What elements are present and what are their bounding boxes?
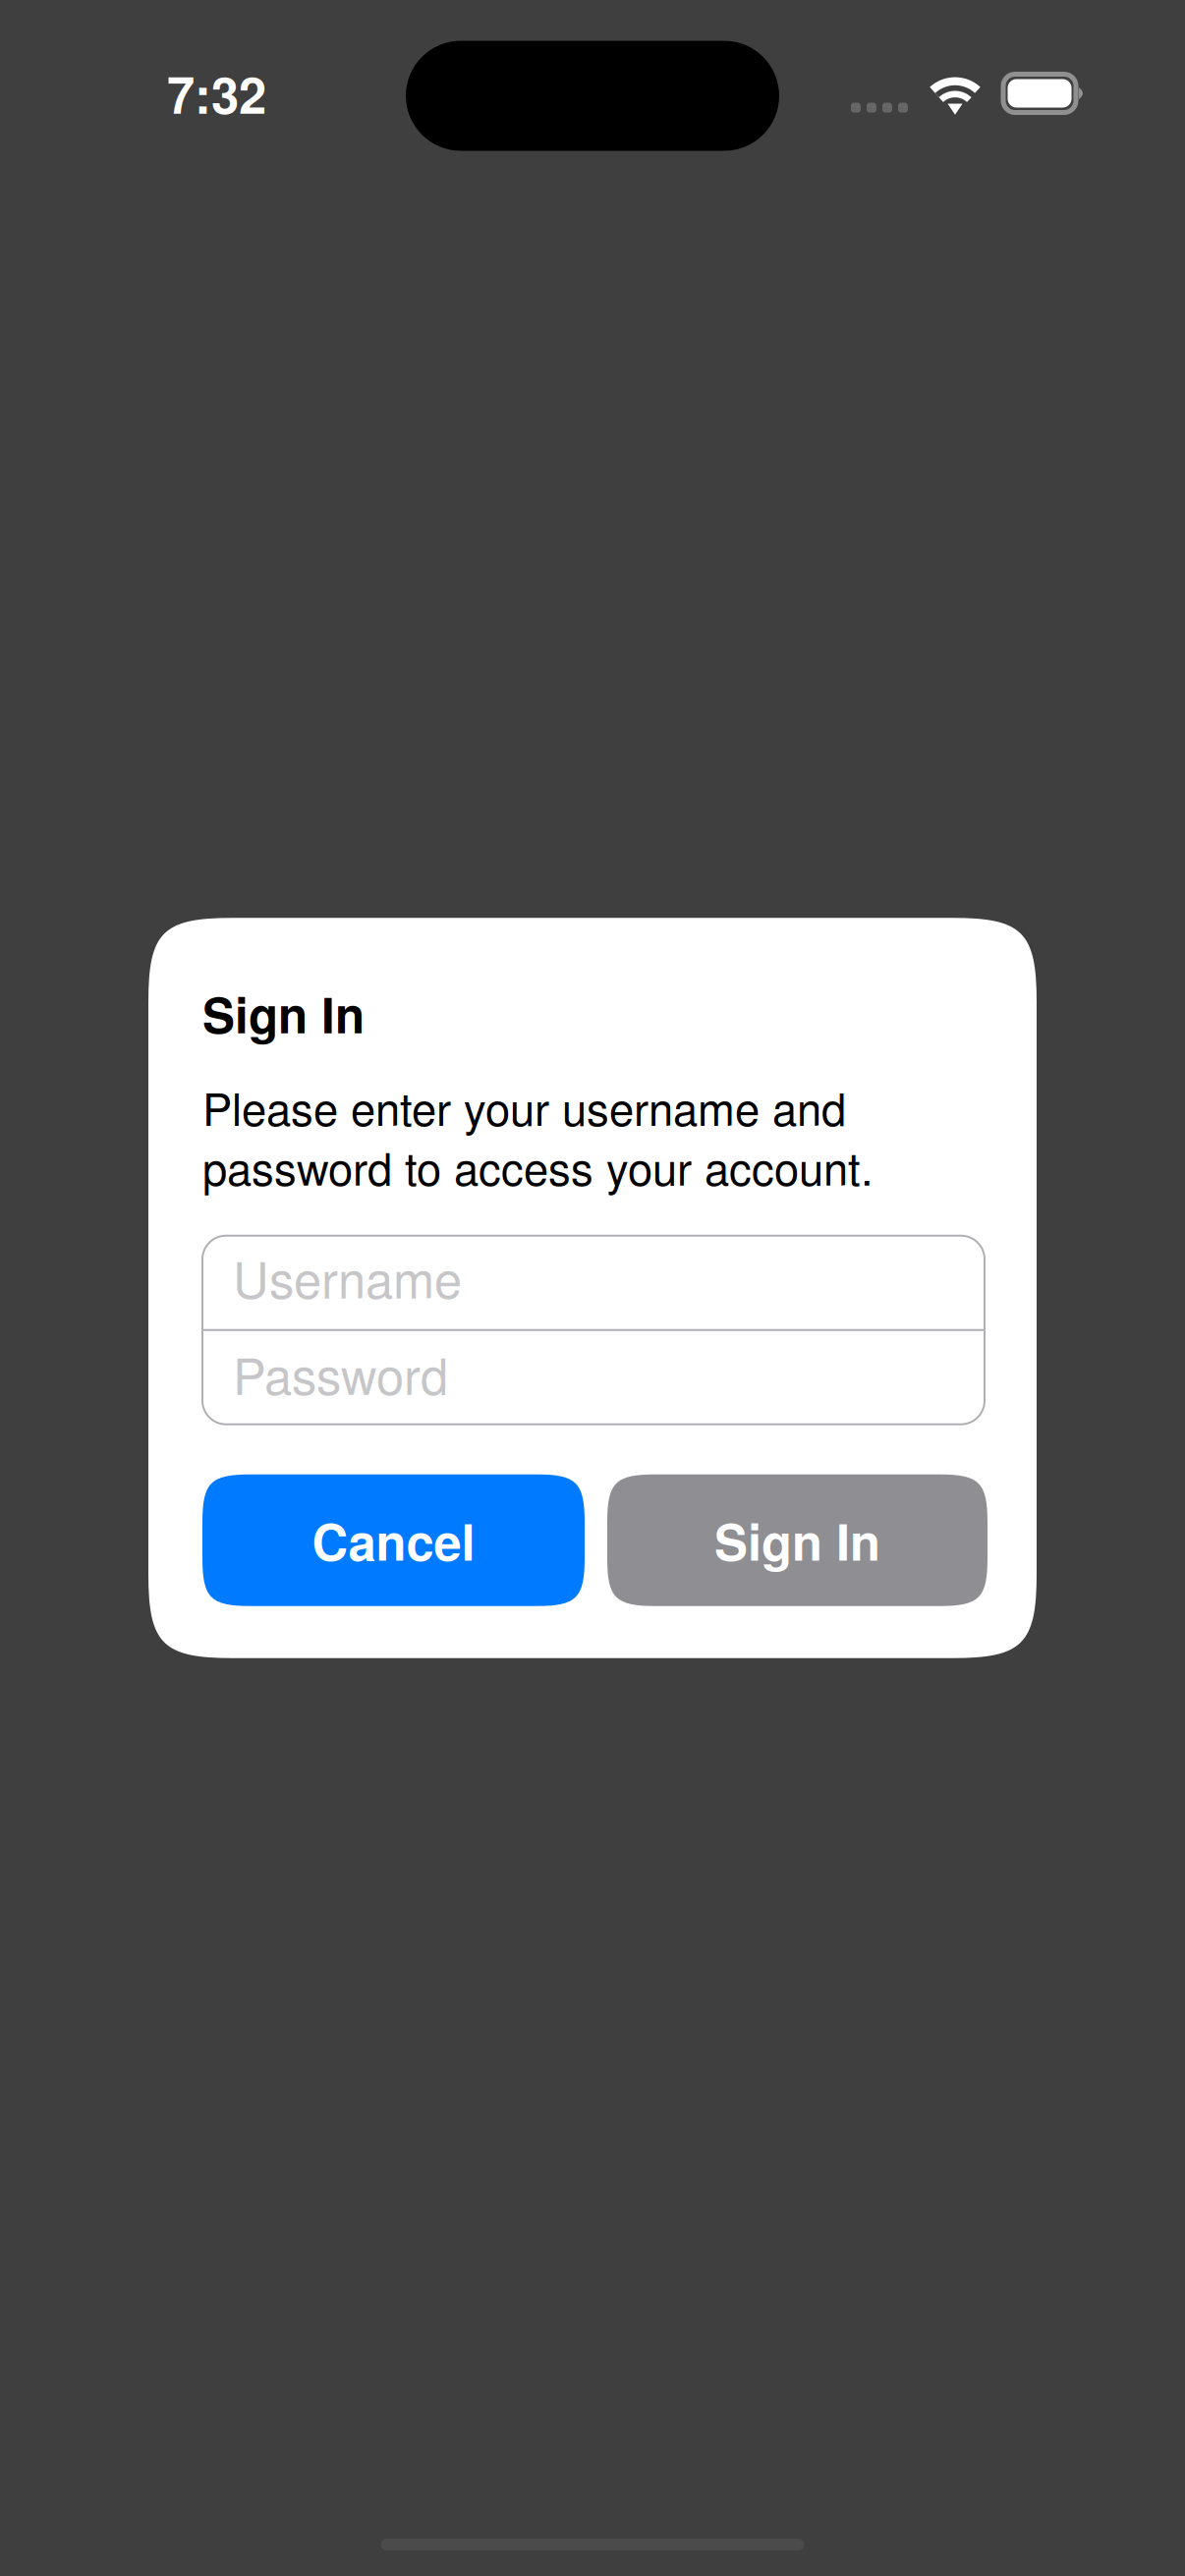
staticText: Sign In xyxy=(714,1505,880,1576)
staticText: Cancel xyxy=(312,1505,475,1576)
staticText: 7:32 xyxy=(167,58,266,129)
staticText: Username xyxy=(233,1241,462,1313)
button[interactable]: Password xyxy=(202,1331,985,1425)
staticText: Please enter your username and xyxy=(202,1075,846,1138)
button[interactable]: Sign In xyxy=(607,1474,987,1606)
button[interactable]: Username xyxy=(202,1235,985,1329)
staticText: Password xyxy=(233,1338,448,1409)
staticText: Sign In xyxy=(202,979,365,1048)
button[interactable]: Cancel xyxy=(202,1474,585,1606)
staticText: password to access your account. xyxy=(202,1135,874,1198)
